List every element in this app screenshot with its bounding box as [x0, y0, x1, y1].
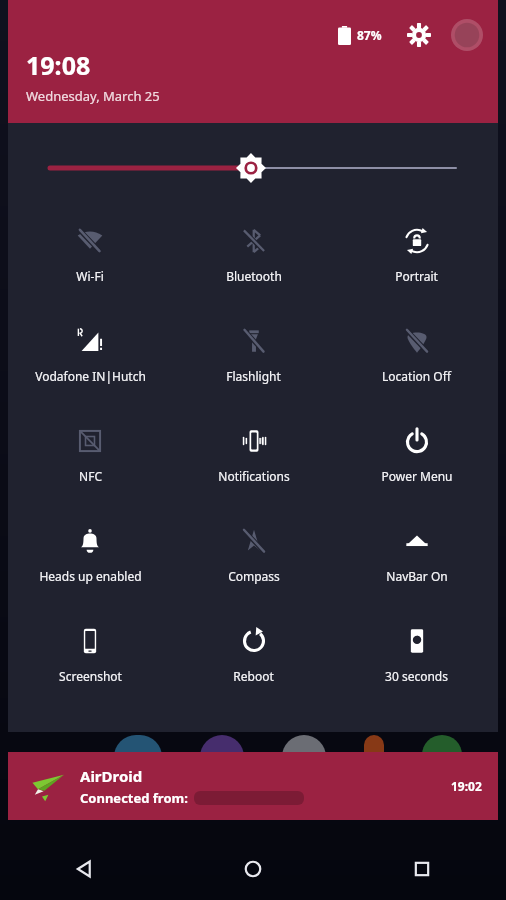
staticText: 87%	[357, 27, 382, 43]
button[interactable]: Screenshot	[8, 605, 172, 705]
staticText: Heads up enabled	[39, 568, 142, 584]
staticText: Vodafone IN|Hutch	[35, 368, 146, 384]
staticText: Wi-Fi	[76, 268, 104, 284]
staticText: 19:02	[451, 778, 482, 794]
button[interactable]: NFC	[8, 405, 172, 505]
button[interactable]: Settings	[404, 20, 434, 50]
button[interactable]: AirDroid	[8, 752, 498, 820]
button[interactable]: Portrait	[335, 205, 498, 305]
staticText: NFC	[79, 468, 102, 484]
staticText: Power Menu	[381, 468, 453, 484]
staticText: Compass	[228, 568, 280, 584]
button[interactable]: Location Off	[335, 305, 498, 405]
button[interactable]: Back	[0, 838, 168, 900]
button[interactable]: Notifications	[172, 405, 335, 505]
button[interactable]: User profile	[450, 18, 484, 52]
button[interactable]: Power Menu	[335, 405, 498, 505]
button[interactable]: Wi-Fi	[8, 205, 172, 305]
button[interactable]: Flashlight	[172, 305, 335, 405]
button[interactable]: Brightness	[8, 153, 498, 183]
staticText: 30 seconds	[385, 668, 448, 684]
staticText: Screenshot	[59, 668, 122, 684]
staticText: Bluetooth	[226, 268, 282, 284]
staticText: AirDroid	[80, 766, 143, 786]
button[interactable]: NavBar On	[335, 505, 498, 605]
staticText: Reboot	[233, 668, 274, 684]
staticText: NavBar On	[386, 568, 448, 584]
button[interactable]: Reboot	[172, 605, 335, 705]
staticText: Connected from:	[80, 789, 188, 807]
staticText: Location Off	[382, 368, 451, 384]
staticText: Notifications	[218, 468, 290, 484]
staticText: Portrait	[395, 268, 438, 284]
staticText: Flashlight	[226, 368, 281, 384]
button[interactable]: Vodafone IN|Hutch	[8, 305, 172, 405]
button[interactable]: Recents	[337, 838, 506, 900]
button[interactable]: Bluetooth	[172, 205, 335, 305]
button[interactable]: 30 seconds	[335, 605, 498, 705]
staticText: 19:08	[26, 48, 91, 82]
button[interactable]: Heads up enabled	[8, 505, 172, 605]
staticText: Wednesday, March 25	[26, 87, 160, 105]
button[interactable]: Home	[168, 838, 337, 900]
button[interactable]: Compass	[172, 505, 335, 605]
